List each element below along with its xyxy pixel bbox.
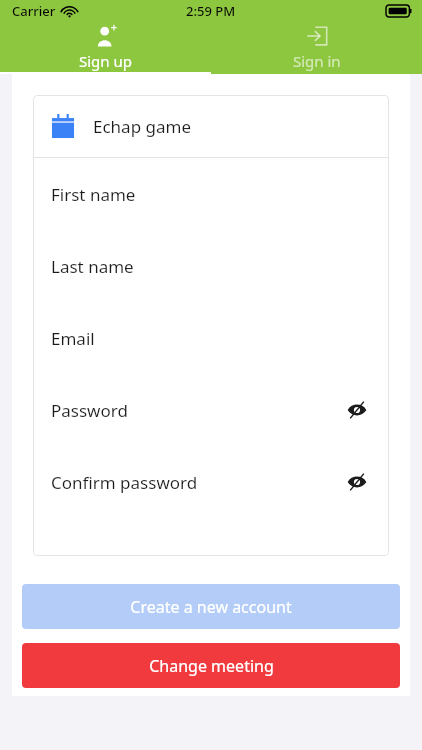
button[interactable]: Change meeting	[22, 643, 400, 688]
button[interactable]: Sign in	[211, 22, 422, 74]
button[interactable]: Echap game	[33, 95, 389, 157]
staticText: Sign in	[293, 51, 341, 71]
staticText: Create a new account	[130, 596, 292, 618]
staticText: Echap game	[93, 115, 192, 138]
staticText: Confirm password	[51, 471, 343, 494]
button[interactable]: Show password	[343, 468, 371, 496]
staticText: Sign up	[79, 51, 132, 71]
button[interactable]: Confirm password	[33, 446, 389, 518]
button[interactable]: Last name	[33, 230, 389, 302]
staticText: Password	[51, 399, 343, 422]
button[interactable]: Password	[33, 374, 389, 446]
button[interactable]: Create a new account	[22, 584, 400, 629]
staticText: 2:59 PM	[186, 2, 236, 20]
button[interactable]: Sign up	[0, 22, 211, 74]
button[interactable]: First name	[33, 158, 389, 230]
staticText: Email	[51, 327, 371, 350]
staticText: Carrier	[12, 2, 56, 20]
button[interactable]: Show password	[343, 396, 371, 424]
button[interactable]: Email	[33, 302, 389, 374]
staticText: Last name	[51, 255, 371, 278]
staticText: Change meeting	[149, 655, 274, 677]
staticText: First name	[51, 183, 371, 206]
